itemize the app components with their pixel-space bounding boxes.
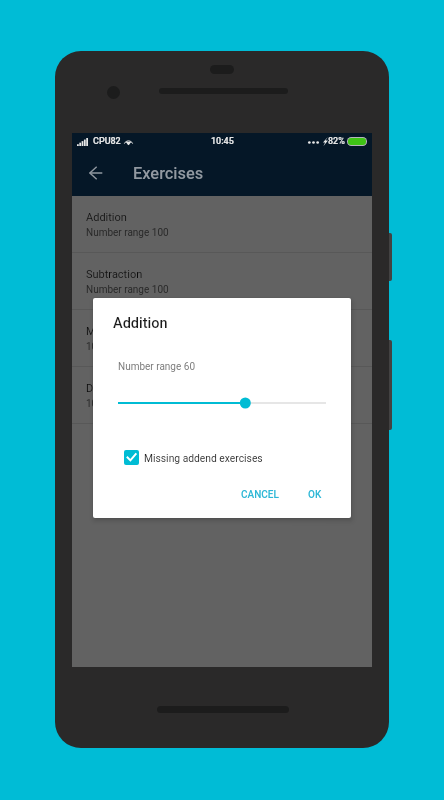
- button[interactable]: Division: [72, 367, 372, 424]
- button[interactable]: CANCEL: [233, 482, 287, 508]
- button[interactable]: Subtraction: [72, 253, 372, 310]
- staticText: 10 x 10: [86, 341, 119, 353]
- staticText: Missing addend exercises: [144, 452, 263, 464]
- staticText: 82%: [328, 136, 345, 147]
- button[interactable]: Back: [72, 148, 120, 196]
- staticText: Subtraction: [86, 268, 143, 281]
- staticText: Addition: [113, 315, 168, 332]
- staticText: Addition: [86, 211, 127, 224]
- button[interactable]: Addition: [72, 196, 372, 253]
- staticText: Division: [86, 382, 125, 395]
- staticText: OK: [308, 489, 322, 501]
- staticText: 10:45: [211, 136, 234, 147]
- button[interactable]: OK: [300, 482, 330, 508]
- button[interactable]: Missing addend exercises: [118, 444, 269, 471]
- staticText: CANCEL: [241, 489, 279, 501]
- staticText: CPU82: [93, 136, 121, 147]
- button[interactable]: Multiplication: [72, 310, 372, 367]
- staticText: Number range 60: [118, 361, 195, 373]
- staticText: Exercises: [133, 164, 204, 183]
- staticText: Multiplication: [86, 325, 153, 338]
- staticText: 10 x 10: [86, 398, 119, 410]
- staticText: Number range 100: [86, 284, 169, 296]
- staticText: Number range 100: [86, 227, 169, 239]
